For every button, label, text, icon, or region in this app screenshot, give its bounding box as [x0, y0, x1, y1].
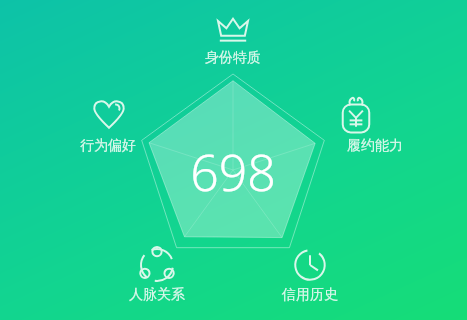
button[interactable]: 行为偏好: [90, 97, 130, 133]
button[interactable]: 信用历史: [290, 246, 330, 284]
staticText: 人脉关系: [129, 286, 185, 304]
staticText: 行为偏好: [80, 137, 136, 155]
button[interactable]: 履约能力: [336, 94, 378, 136]
button[interactable]: 人脉关系: [137, 246, 177, 284]
staticText: 身份特质: [205, 49, 261, 67]
button[interactable]: 信用历史: [260, 285, 360, 305]
button[interactable]: 履约能力: [325, 136, 425, 156]
button[interactable]: 身份特质: [183, 48, 283, 68]
button[interactable]: 人脉关系: [107, 285, 207, 305]
button[interactable]: 身份特质: [210, 10, 256, 44]
staticText: 698: [190, 138, 276, 200]
staticText: 信用历史: [282, 286, 338, 304]
button[interactable]: 698: [173, 138, 293, 200]
button[interactable]: 行为偏好: [58, 136, 158, 156]
staticText: 履约能力: [347, 137, 403, 155]
